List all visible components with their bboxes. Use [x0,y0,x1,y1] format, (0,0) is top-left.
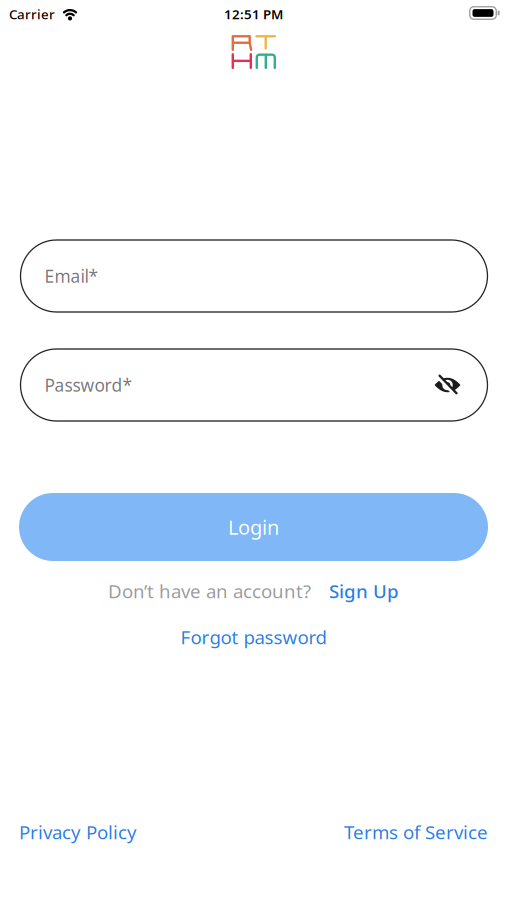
staticText: Carrier [9,5,55,23]
button[interactable]: Forgot password [180,625,326,649]
staticText: Sign Up [329,579,399,603]
button[interactable]: Privacy Policy [19,820,137,844]
button[interactable]: Email* [20,240,487,312]
staticText: Password* [44,373,132,396]
button[interactable]: Terms of Service [344,820,488,844]
staticText: Login [228,514,279,540]
staticText: Email* [44,264,98,287]
staticText: Don’t have an account? [108,579,311,603]
staticText: 12:51 PM [224,5,283,23]
staticText: Terms of Service [344,820,488,844]
staticText: Forgot password [180,625,326,649]
button[interactable]: Show password [434,376,461,393]
staticText: Privacy Policy [19,820,137,844]
button[interactable]: Sign Up [329,579,399,603]
button[interactable]: Login [19,493,488,561]
button[interactable]: Password* [20,349,487,421]
